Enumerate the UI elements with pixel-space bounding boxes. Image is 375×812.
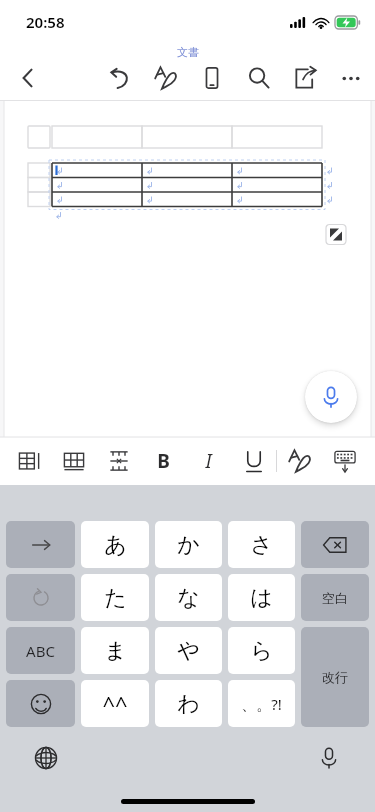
button[interactable]: Markup bbox=[146, 58, 186, 98]
button[interactable]: 、。?! bbox=[228, 680, 295, 727]
button[interactable]: 改行 bbox=[301, 627, 369, 727]
button[interactable]: Mobile view bbox=[192, 58, 232, 98]
staticText: ら bbox=[250, 637, 273, 665]
button[interactable]: Dictation bbox=[309, 738, 349, 778]
button[interactable]: Undo bbox=[100, 58, 140, 98]
button[interactable]: あ bbox=[81, 521, 149, 568]
button[interactable]: Hide keyboard bbox=[322, 437, 367, 485]
button[interactable]: な bbox=[155, 574, 222, 621]
button[interactable]: か bbox=[155, 521, 222, 568]
button[interactable]: ら bbox=[228, 627, 295, 674]
button[interactable]: Insert table row bbox=[52, 437, 96, 485]
button[interactable]: Delete bbox=[301, 521, 369, 568]
staticText: た bbox=[104, 584, 127, 612]
button[interactable]: Undo bbox=[6, 574, 75, 621]
staticText: か bbox=[177, 531, 200, 559]
button[interactable]: わ bbox=[155, 680, 222, 727]
button[interactable]: More bbox=[331, 58, 371, 98]
button[interactable]: Search bbox=[239, 58, 279, 98]
button[interactable]: Next bbox=[6, 521, 75, 568]
staticText: さ bbox=[250, 531, 273, 559]
button[interactable]: ^^ bbox=[81, 680, 149, 727]
button[interactable]: Underline bbox=[231, 437, 276, 485]
button[interactable]: Insert table column bbox=[8, 437, 52, 485]
staticText: 改行 bbox=[322, 669, 348, 685]
staticText: 、。?! bbox=[241, 694, 282, 714]
staticText: B bbox=[157, 448, 170, 474]
button[interactable]: B bbox=[141, 437, 186, 485]
button[interactable]: や bbox=[155, 627, 222, 674]
button[interactable]: Markup bbox=[277, 437, 322, 485]
staticText: 20:58 bbox=[26, 12, 65, 32]
staticText: や bbox=[177, 637, 200, 665]
staticText: 空白 bbox=[322, 590, 348, 606]
button[interactable]: Delete cells bbox=[96, 437, 141, 485]
button[interactable]: は bbox=[228, 574, 295, 621]
staticText: な bbox=[177, 584, 200, 612]
staticText: 文書 bbox=[177, 45, 199, 59]
button[interactable]: た bbox=[81, 574, 149, 621]
staticText: ABC bbox=[26, 641, 55, 661]
button[interactable]: さ bbox=[228, 521, 295, 568]
staticText: わ bbox=[177, 690, 200, 718]
button[interactable]: Dictate bbox=[305, 371, 357, 423]
staticText: ま bbox=[104, 637, 127, 665]
button[interactable]: Share bbox=[285, 58, 325, 98]
staticText: ^^ bbox=[102, 689, 128, 719]
button[interactable]: Change keyboard bbox=[26, 738, 66, 778]
button[interactable]: Back bbox=[6, 56, 50, 100]
button[interactable]: ま bbox=[81, 627, 149, 674]
staticText: I bbox=[205, 448, 212, 474]
button[interactable]: Emoji bbox=[6, 680, 75, 727]
staticText: は bbox=[250, 584, 273, 612]
staticText: あ bbox=[104, 531, 127, 559]
button[interactable]: 空白 bbox=[301, 574, 369, 621]
button[interactable]: ABC bbox=[6, 627, 75, 674]
button[interactable]: I bbox=[186, 437, 231, 485]
